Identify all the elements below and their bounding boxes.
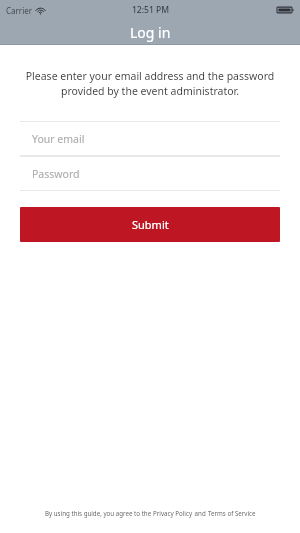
button[interactable]: Password bbox=[0, 156, 300, 191]
staticText: Log in bbox=[130, 23, 171, 42]
button[interactable]: Privacy Policy bbox=[153, 509, 193, 517]
button[interactable]: Submit bbox=[20, 207, 280, 242]
staticText: Password bbox=[32, 167, 80, 181]
staticText: 12:51 PM bbox=[132, 4, 169, 16]
staticText: Your email bbox=[32, 132, 85, 146]
button[interactable]: Terms of Service bbox=[208, 509, 256, 517]
staticText: Please enter your email address and the … bbox=[20, 69, 280, 98]
staticText: Privacy Policy bbox=[153, 509, 193, 517]
staticText: Terms of Service bbox=[208, 509, 256, 517]
staticText: By using this guide, you agree to the bbox=[45, 509, 153, 517]
staticText: Carrier bbox=[6, 5, 33, 16]
button[interactable]: Your email bbox=[0, 121, 300, 156]
staticText: Submit bbox=[132, 217, 169, 232]
staticText: and bbox=[193, 509, 208, 517]
